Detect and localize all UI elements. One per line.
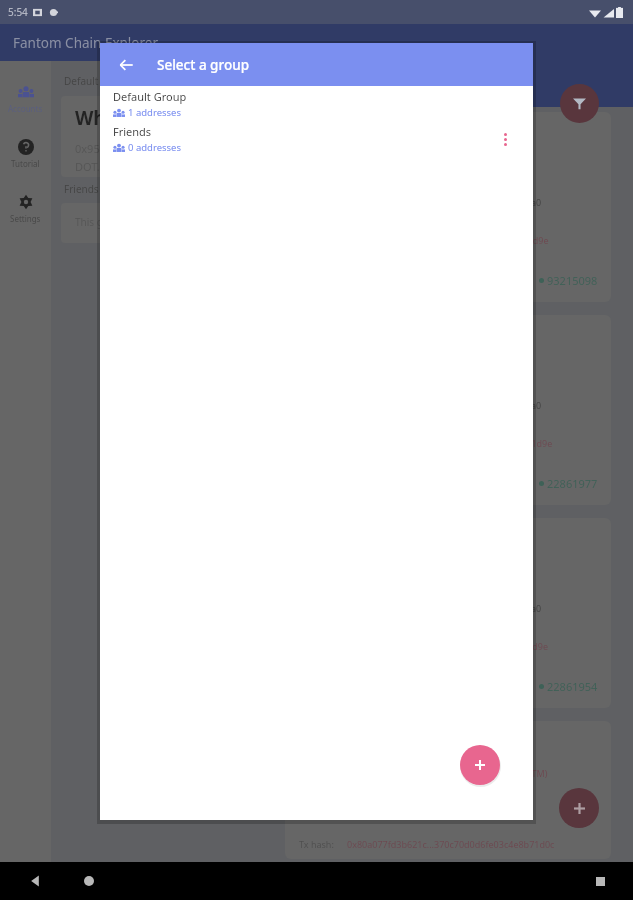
button[interactable]: More options [493,127,517,151]
staticText: Default Group [64,74,131,88]
button[interactable]: Friends [100,121,533,156]
button[interactable]: Add group [460,745,500,785]
button[interactable]: Accounts [0,83,51,115]
staticText: Select a group [157,56,250,74]
staticText: DOT.com [75,159,122,174]
button[interactable]: Value: 0.0 FTM (0.0000000000000000000000… [285,721,611,859]
staticText: 22861977 [547,476,598,491]
button[interactable]: Filter [560,84,599,123]
staticText: This group has no addresses [75,215,210,229]
staticText: To: 0x0xCc13...e3cfab4ad1f7b71a0c2ec8c4f… [299,640,549,652]
staticText: Fantom Chain Explorer [13,34,158,52]
staticText: To: 0x0xA2cc...f8d9ab4ad1f7b71a0c2ec8c4f… [299,234,549,246]
staticText: Settings [10,213,41,224]
staticText: 5:54 [8,5,28,19]
staticText: 1 addresses [128,106,182,119]
staticText: From: 0x7c4ab4ad1f7b71a0c2ec8c4f82b1d93e… [299,399,542,411]
staticText: Friends [64,182,99,196]
staticText: 93215098 [547,273,598,288]
button[interactable]: Settings [0,193,51,225]
staticText: Tutorial [11,158,40,169]
button[interactable]: Default Group [100,86,533,121]
staticText: Tx hash: [299,838,334,850]
button[interactable]: Add [559,788,599,828]
button[interactable]: Back [29,875,41,887]
staticText: Accounts [8,103,43,114]
staticText: To: 0x0xB40e...3b72ab4ad1f7b71a0c2ec8c4f… [299,437,553,449]
button[interactable]: Tx hash: 0x0x9cB71c7a3b...88ef4029a1d [285,112,611,302]
staticText: 0x95fB...21a0e3 [75,141,157,156]
staticText: 22861954 [547,679,598,694]
staticText: Whitelist [75,105,161,131]
staticText: Friends [113,124,152,139]
button[interactable]: Tx hash: 0x0x1d721c7a3b...88ef4029a1d [285,315,611,505]
button[interactable]: Home [84,876,94,886]
button[interactable]: Whitelist [61,96,253,177]
button[interactable]: Back [115,54,137,76]
staticText: 0 addresses [128,141,182,154]
staticText: From: 0x7c4ab4ad1f7b71a0c2ec8c4f82b1d93e… [299,602,542,614]
staticText: From: 0x7c4ab4ad1f7b71a0c2ec8c4f82b1d93e… [299,196,542,208]
button[interactable]: Tutorial [0,138,51,170]
button[interactable]: This group has no addresses [61,203,253,243]
staticText: Value: 0.0 FTM (0.0000000000000000000000… [299,767,548,779]
button[interactable]: Tx hash: 0x0x80af1c7a3b...88ef4029a1d [285,518,611,708]
staticText: Default Group [113,89,187,104]
staticText: 0x80a077fd3b621c...370c70d0d6fe03c4e8b71… [347,838,555,850]
